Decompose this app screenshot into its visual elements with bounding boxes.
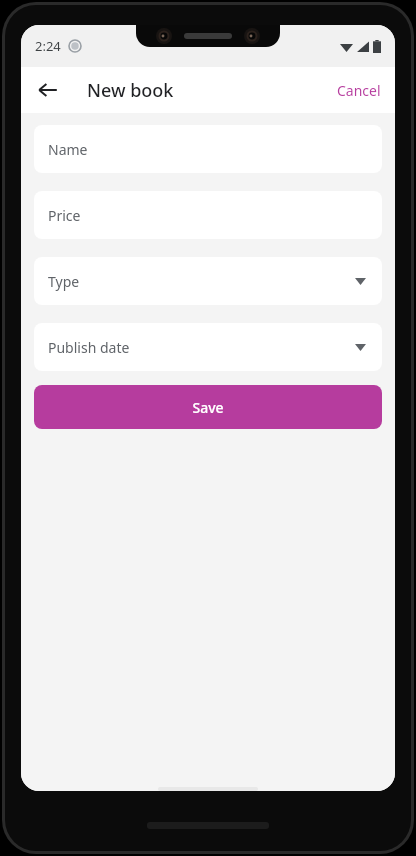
- button[interactable]: Save: [34, 385, 382, 429]
- staticText: Type: [48, 272, 80, 291]
- button[interactable]: Price: [34, 191, 382, 239]
- button[interactable]: Back: [27, 69, 69, 111]
- button[interactable]: Type: [34, 257, 382, 305]
- button[interactable]: Cancel: [323, 73, 395, 108]
- staticText: Save: [192, 398, 224, 417]
- button[interactable]: Publish date: [34, 323, 382, 371]
- staticText: Cancel: [337, 81, 381, 100]
- staticText: New book: [87, 78, 174, 103]
- staticText: Publish date: [48, 338, 130, 357]
- staticText: 2:24: [35, 37, 61, 55]
- staticText: Name: [48, 140, 88, 159]
- button[interactable]: Name: [34, 125, 382, 173]
- staticText: Price: [48, 206, 81, 225]
